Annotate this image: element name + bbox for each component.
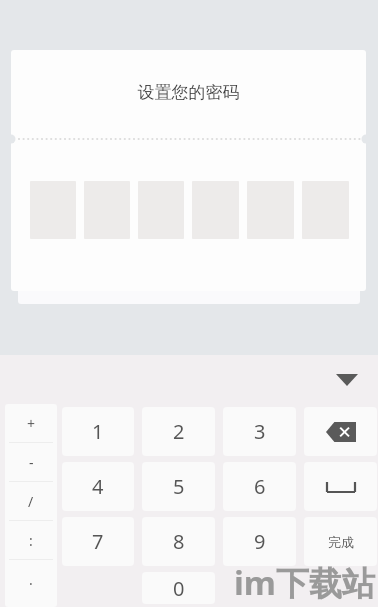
- staticText: im下载站: [234, 560, 376, 605]
- button[interactable]: 8: [142, 517, 215, 566]
- staticText: .: [29, 570, 33, 589]
- button[interactable]: /: [5, 482, 57, 520]
- staticText: 2: [173, 418, 185, 445]
- button[interactable]: +: [5, 404, 57, 442]
- staticText: 6: [254, 473, 266, 500]
- staticText: 5: [173, 473, 185, 500]
- button[interactable]: .: [5, 560, 57, 598]
- button[interactable]: Hide keyboard: [330, 363, 364, 397]
- staticText: 4: [92, 473, 104, 500]
- button[interactable]: 0: [142, 572, 215, 604]
- button[interactable]: 6: [223, 462, 296, 511]
- staticText: 完成: [328, 534, 354, 550]
- button[interactable]: 5: [142, 462, 215, 511]
- staticText: /: [28, 492, 34, 511]
- staticText: :: [29, 531, 33, 550]
- staticText: 3: [254, 418, 266, 445]
- staticText: 9: [254, 528, 266, 555]
- button[interactable]: Backspace: [304, 407, 377, 456]
- button[interactable]: :: [5, 521, 57, 559]
- staticText: -: [29, 453, 34, 472]
- button[interactable]: 3: [223, 407, 296, 456]
- staticText: 8: [173, 528, 185, 555]
- button[interactable]: 完成: [304, 517, 377, 566]
- staticText: +: [27, 414, 36, 433]
- button[interactable]: Space: [304, 462, 377, 511]
- button[interactable]: 1: [62, 407, 134, 456]
- button[interactable]: 2: [142, 407, 215, 456]
- staticText: 0: [173, 575, 185, 602]
- button[interactable]: 9: [223, 517, 296, 566]
- staticText: 设置您的密码: [11, 82, 366, 103]
- staticText: 7: [92, 528, 104, 555]
- staticText: 1: [92, 418, 104, 445]
- button[interactable]: 4: [62, 462, 134, 511]
- button[interactable]: 7: [62, 517, 134, 566]
- button[interactable]: -: [5, 443, 57, 481]
